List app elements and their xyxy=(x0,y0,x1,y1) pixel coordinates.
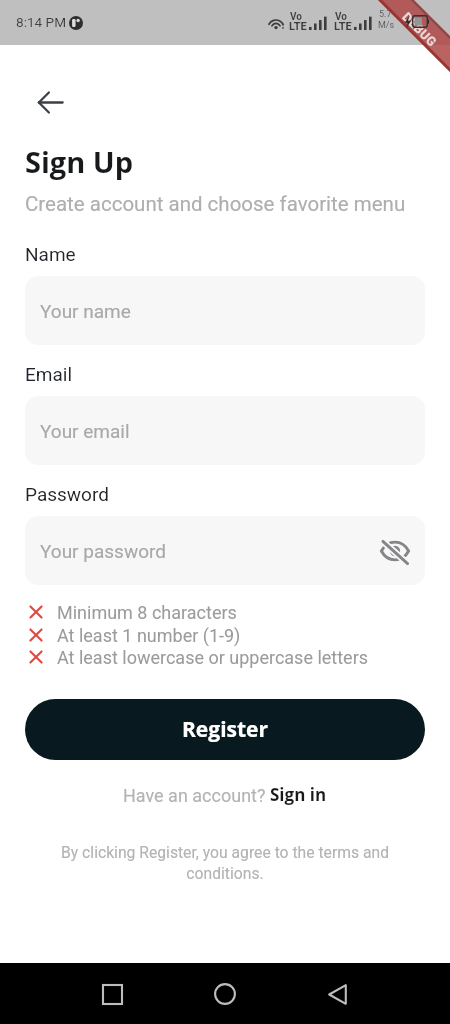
staticText: M/s xyxy=(378,20,395,31)
staticText: Your password xyxy=(40,540,166,562)
staticText: Name xyxy=(25,243,76,265)
staticText: Register xyxy=(182,715,269,744)
staticText: By clicking Register, you agree to the t… xyxy=(57,843,393,882)
button[interactable]: Register xyxy=(25,699,425,760)
button[interactable]: Back xyxy=(313,970,361,1018)
button[interactable]: Back xyxy=(28,80,72,124)
staticText: Password xyxy=(25,483,109,505)
staticText: Vo xyxy=(290,11,302,23)
staticText: Create account and choose favorite menu xyxy=(25,192,406,216)
staticText: Email xyxy=(25,363,73,385)
button[interactable]: Your password xyxy=(25,516,425,585)
button[interactable]: Your email xyxy=(25,396,425,465)
staticText: Sign Up xyxy=(25,142,134,181)
staticText: DEBUG xyxy=(399,9,440,49)
staticText: At least 1 number (1-9) xyxy=(57,625,241,646)
staticText: At least lowercase or uppercase letters xyxy=(57,647,369,668)
button[interactable]: Home xyxy=(201,970,249,1018)
button[interactable]: Sign in xyxy=(270,783,327,806)
staticText: LTE xyxy=(334,20,352,33)
button[interactable]: Recent apps xyxy=(88,970,136,1018)
staticText: Vo xyxy=(335,11,347,23)
staticText: 8:14 PM xyxy=(16,14,67,30)
staticText: Your name xyxy=(40,300,131,322)
button[interactable]: Show password xyxy=(375,531,415,571)
button[interactable]: Your name xyxy=(25,276,425,345)
staticText: Have an account? xyxy=(123,785,270,806)
staticText: Minimum 8 characters xyxy=(57,602,237,623)
staticText: LTE xyxy=(289,20,307,33)
staticText: 5.7 xyxy=(379,9,392,20)
staticText: Your email xyxy=(40,420,130,442)
